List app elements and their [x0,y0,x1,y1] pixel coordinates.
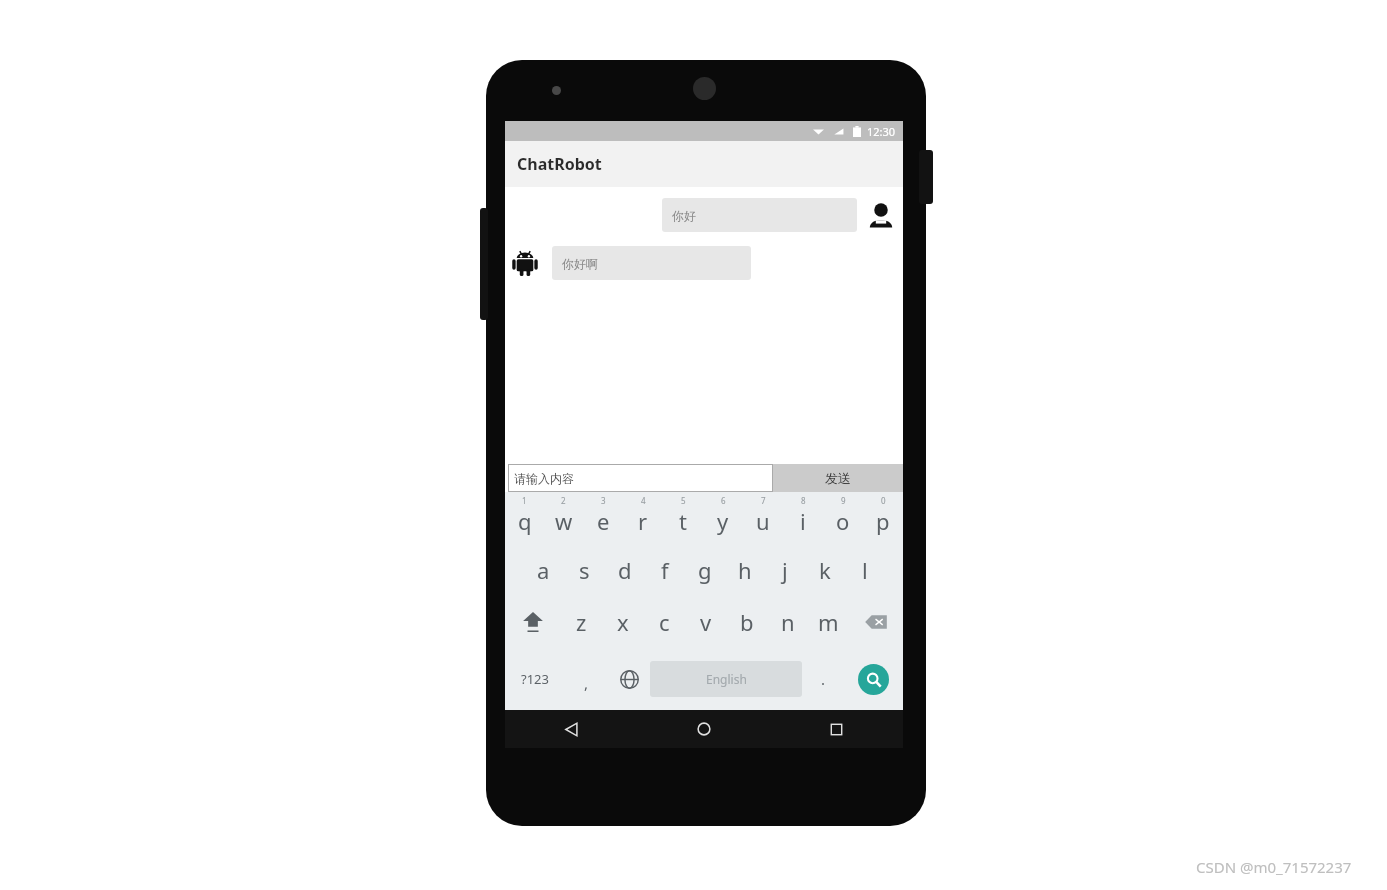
staticText: f [661,555,669,585]
button[interactable]: z [560,596,602,648]
staticText: . [821,669,826,689]
button[interactable]: s [564,544,605,596]
button[interactable]: a [523,544,564,596]
button[interactable]: 请输入内容 [508,464,773,492]
staticText: u [756,506,770,536]
staticText: s [579,555,590,585]
button[interactable]: b [726,596,767,648]
button[interactable]: 发送 [773,464,903,492]
staticText: i [800,506,806,536]
staticText: English [706,671,747,687]
staticText: CSDN @m0_71572237 [1196,857,1352,877]
staticText: ?123 [521,670,549,688]
button[interactable]: Backspace [849,596,903,648]
button[interactable]: 7 [743,492,783,544]
staticText: w [555,506,573,536]
staticText: 0 [881,495,886,506]
staticText: l [862,555,868,585]
button[interactable]: d [605,544,645,596]
staticText: 发送 [825,470,851,486]
staticText: , [584,673,589,693]
button[interactable]: l [845,544,885,596]
staticText: 2 [561,495,566,506]
staticText: ChatRobot [517,153,602,175]
staticText: t [679,506,687,536]
button[interactable]: 1 [505,492,544,544]
other: Robot avatar [510,248,540,278]
staticText: g [698,555,712,585]
button[interactable]: 你好 [662,198,857,232]
button[interactable]: , [565,648,608,710]
staticText: 8 [801,495,806,506]
button[interactable]: c [644,596,685,648]
staticText: d [618,555,632,585]
button[interactable]: Search [844,648,903,710]
staticText: 12:30 [867,124,896,139]
staticText: 4 [641,495,646,506]
button[interactable]: Back [505,710,637,748]
button[interactable]: English [650,661,802,697]
staticText: r [638,506,648,536]
button[interactable]: k [805,544,845,596]
other: User avatar [867,201,895,229]
staticText: 3 [601,495,606,506]
button[interactable]: 0 [863,492,903,544]
button[interactable]: f [645,544,685,596]
staticText: h [738,555,752,585]
staticText: 9 [841,495,846,506]
button[interactable]: . [802,648,844,710]
button[interactable]: 4 [623,492,663,544]
staticText: j [782,555,788,585]
staticText: o [836,506,850,536]
staticText: 请输入内容 [514,471,574,486]
staticText: c [659,607,670,637]
button[interactable]: 你好啊 [552,246,751,280]
button[interactable]: g [685,544,725,596]
button[interactable]: 3 [583,492,623,544]
staticText: z [576,607,587,637]
staticText: q [518,506,532,536]
button[interactable]: m [808,596,849,648]
button[interactable]: 6 [703,492,743,544]
button[interactable]: Change language [608,648,650,710]
staticText: 5 [681,495,686,506]
button[interactable]: Recent apps [770,710,903,748]
staticText: b [740,607,754,637]
staticText: 你好 [672,208,696,223]
button[interactable]: 5 [663,492,703,544]
button[interactable]: x [602,596,644,648]
button[interactable]: n [767,596,808,648]
staticText: a [537,555,550,585]
staticText: k [819,555,831,585]
staticText: 7 [761,495,766,506]
button[interactable]: Shift [505,596,560,648]
staticText: p [876,506,890,536]
staticText: x [617,607,629,637]
staticText: v [700,607,712,637]
button[interactable]: 2 [544,492,583,544]
staticText: e [597,506,610,536]
button[interactable]: 9 [823,492,863,544]
staticText: m [818,607,839,637]
button[interactable]: ?123 [505,648,565,710]
staticText: 你好啊 [562,256,598,271]
staticText: 6 [721,495,726,506]
button[interactable]: j [765,544,805,596]
button[interactable]: 8 [783,492,823,544]
button[interactable]: v [685,596,726,648]
staticText: 1 [522,495,527,506]
staticText: y [717,506,729,536]
button[interactable]: h [725,544,765,596]
staticText: n [781,607,795,637]
button[interactable]: Home [637,710,770,748]
